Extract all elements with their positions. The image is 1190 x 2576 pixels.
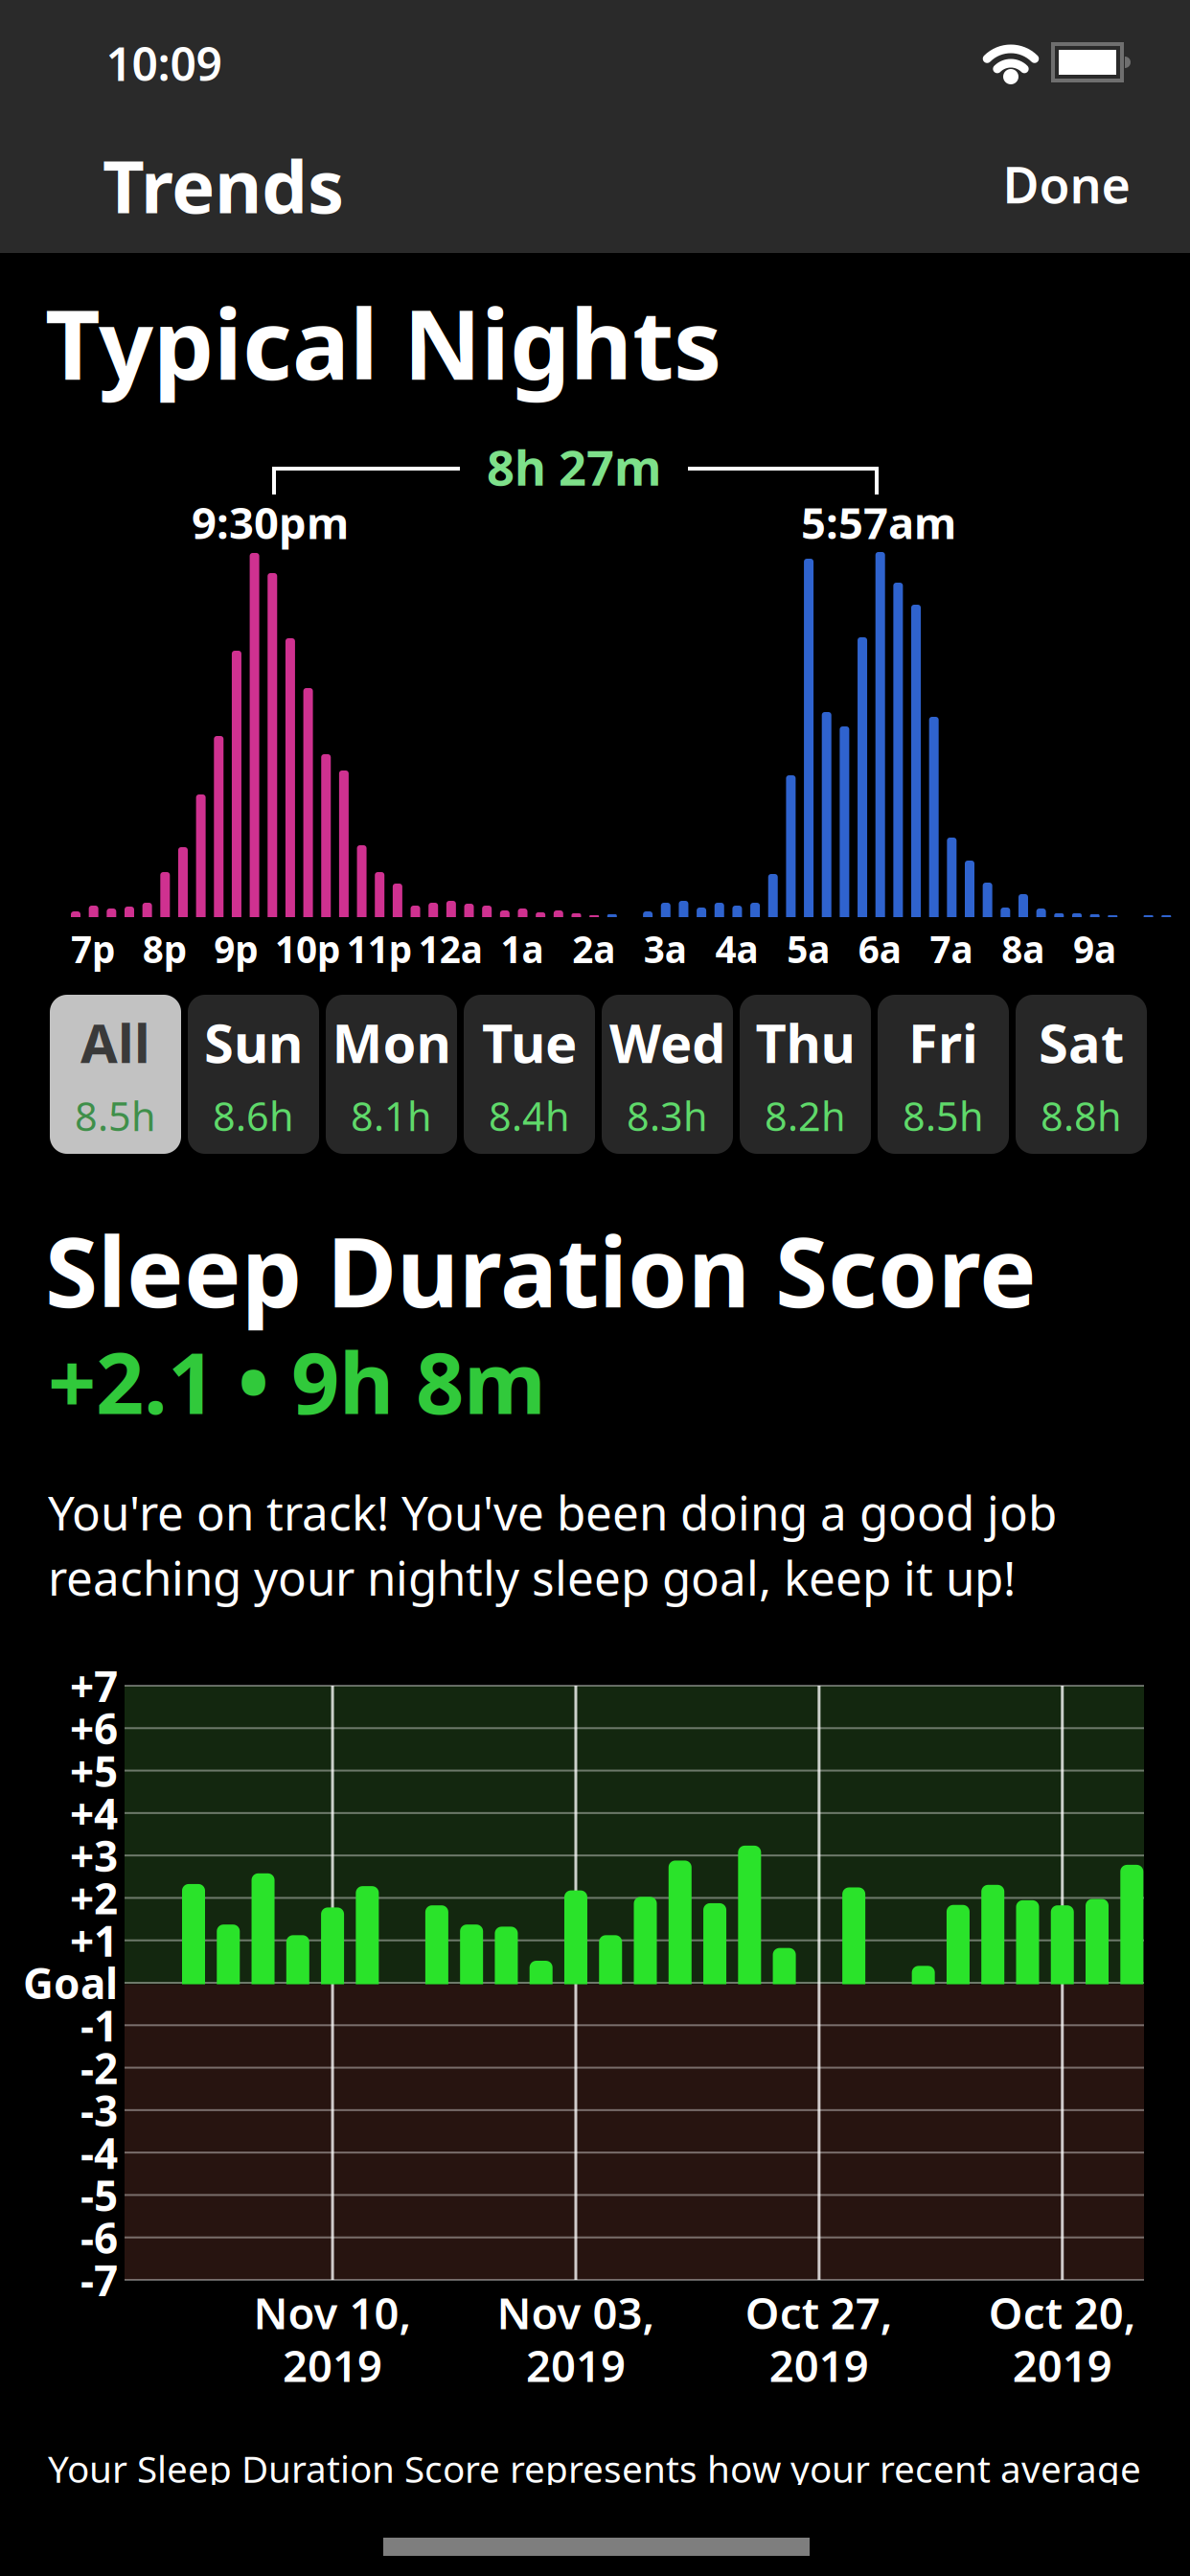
button[interactable]: Fri <box>878 995 1009 1154</box>
staticText: 11p <box>347 924 412 973</box>
staticText: Sun <box>204 1007 303 1078</box>
staticText: Sat <box>1039 1007 1124 1078</box>
staticText: -5 <box>80 2167 118 2223</box>
staticText: 9a <box>1073 924 1116 973</box>
staticText: +3 <box>70 1827 118 1883</box>
staticText: All <box>80 1007 150 1078</box>
staticText: +2.1 • 9h 8m <box>48 1325 546 1437</box>
staticText: Oct 27, <box>745 2284 893 2341</box>
staticText: Typical Nights <box>45 279 721 406</box>
staticText: 8.8h <box>1041 1089 1122 1142</box>
staticText: 3a <box>644 924 687 973</box>
staticText: Trends <box>103 137 344 233</box>
staticText: 4a <box>715 924 758 973</box>
button[interactable]: Mon <box>326 995 457 1154</box>
staticText: -7 <box>80 2252 118 2308</box>
staticText: +7 <box>70 1658 118 1714</box>
staticText: 2a <box>572 924 615 973</box>
button[interactable]: Sat <box>1016 995 1147 1154</box>
staticText: +5 <box>70 1743 118 1799</box>
staticText: 8h 27m <box>487 435 661 499</box>
staticText: 2019 <box>769 2336 869 2394</box>
staticText: 6a <box>858 924 902 973</box>
button[interactable]: All <box>50 995 181 1154</box>
staticText: You're on track! You've been doing a goo… <box>48 1481 1057 1543</box>
button[interactable]: Done <box>1003 151 1130 217</box>
staticText: -1 <box>80 1997 118 2053</box>
staticText: 8p <box>142 924 187 973</box>
staticText: 7a <box>930 924 973 973</box>
staticText: -3 <box>80 2082 118 2138</box>
staticText: Fri <box>908 1007 978 1078</box>
staticText: 5:57am <box>801 493 956 551</box>
staticText: -6 <box>80 2209 118 2265</box>
staticText: 5a <box>787 924 830 973</box>
staticText: +4 <box>70 1785 118 1841</box>
staticText: 2019 <box>283 2336 382 2394</box>
staticText: Goal <box>23 1955 118 2011</box>
staticText: Tue <box>482 1007 577 1078</box>
button[interactable]: Thu <box>740 995 871 1154</box>
staticText: 8.3h <box>627 1089 708 1142</box>
staticText: 8.2h <box>765 1089 846 1142</box>
staticText: Nov 10, <box>254 2284 412 2341</box>
staticText: 8.5h <box>903 1089 984 1142</box>
staticText: Sleep Duration Score <box>45 1207 1037 1334</box>
staticText: +1 <box>70 1912 118 1968</box>
staticText: 8a <box>1001 924 1045 973</box>
staticText: 8.5h <box>75 1089 156 1142</box>
staticText: Thu <box>755 1007 855 1078</box>
button[interactable]: Tue <box>464 995 595 1154</box>
staticText: Wed <box>609 1007 725 1078</box>
staticText: Your Sleep Duration Score represents how… <box>48 2444 1141 2493</box>
staticText: -4 <box>80 2125 118 2180</box>
staticText: -2 <box>80 2040 118 2096</box>
button[interactable]: Sun <box>188 995 319 1154</box>
staticText: Oct 20, <box>989 2284 1136 2341</box>
staticText: 10:09 <box>106 33 222 94</box>
staticText: reaching your nightly sleep goal, keep i… <box>48 1546 1016 1609</box>
staticText: 7p <box>71 924 115 973</box>
staticText: 8.1h <box>351 1089 432 1142</box>
staticText: 10p <box>275 924 340 973</box>
staticText: 9:30pm <box>192 493 349 551</box>
staticText: Done <box>1003 151 1130 217</box>
staticText: Mon <box>332 1007 451 1078</box>
button[interactable]: Wed <box>602 995 733 1154</box>
staticText: +2 <box>70 1870 118 1926</box>
staticText: 8.6h <box>213 1089 294 1142</box>
staticText: 2019 <box>526 2336 626 2394</box>
staticText: 1a <box>501 924 544 973</box>
staticText: Nov 03, <box>497 2284 655 2341</box>
staticText: 2019 <box>1013 2336 1112 2394</box>
staticText: +6 <box>70 1700 118 1756</box>
staticText: 9p <box>214 924 258 973</box>
staticText: 12a <box>419 924 483 973</box>
staticText: 8.4h <box>489 1089 570 1142</box>
